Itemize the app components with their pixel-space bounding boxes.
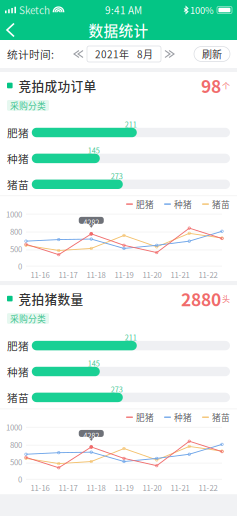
staticText: 145: [88, 358, 100, 369]
staticText: 500: [10, 456, 22, 467]
staticText: 11-17: [58, 269, 77, 280]
staticText: 数据统计: [88, 19, 148, 41]
staticText: 11-21: [170, 269, 189, 280]
staticText: 采购分类: [10, 99, 46, 112]
staticText: 0: [18, 474, 22, 485]
staticText: 肥猪: [136, 198, 154, 210]
staticText: 145: [88, 145, 100, 155]
staticText: 种猪: [174, 198, 192, 210]
staticText: 2880: [181, 286, 221, 311]
button[interactable]: 2021年: [87, 46, 161, 62]
staticText: 211: [125, 332, 137, 343]
staticText: 800: [10, 439, 22, 450]
staticText: 肥猪: [7, 338, 29, 353]
button[interactable]: Next month: [161, 46, 178, 61]
staticText: 2021年: [95, 47, 129, 61]
staticText: 0: [18, 260, 22, 272]
staticText: 1000: [6, 208, 22, 220]
staticText: 刷新: [202, 47, 222, 61]
staticText: 个: [222, 80, 230, 91]
staticText: 11-17: [58, 482, 77, 493]
staticText: 猪苗: [212, 411, 230, 423]
staticText: Sketch: [19, 3, 50, 17]
staticText: 1000: [6, 422, 22, 433]
staticText: 11-18: [86, 269, 105, 280]
staticText: 100%: [190, 3, 214, 17]
staticText: 273: [111, 171, 123, 181]
staticText: 98: [201, 73, 221, 98]
staticText: 种猪: [7, 151, 29, 166]
staticText: 竞拍猪数量: [19, 289, 84, 308]
staticText: 11-21: [170, 482, 189, 493]
staticText: 猪苗: [7, 177, 29, 192]
staticText: 4282: [83, 217, 99, 228]
button[interactable]: Previous month: [70, 46, 87, 61]
staticText: 11-16: [30, 482, 49, 493]
staticText: 11-19: [114, 269, 133, 280]
staticText: 800: [10, 226, 22, 237]
staticText: 500: [10, 243, 22, 254]
staticText: 11-22: [198, 269, 217, 280]
staticText: 竞拍成功订单: [19, 76, 97, 95]
button[interactable]: Back: [0, 20, 21, 40]
staticText: 11-18: [86, 482, 105, 493]
staticText: 采购分类: [10, 312, 46, 325]
staticText: 211: [125, 119, 137, 130]
staticText: 种猪: [174, 411, 192, 423]
staticText: 猪苗: [7, 390, 29, 405]
staticText: 273: [111, 384, 123, 394]
staticText: 4282: [83, 430, 99, 441]
staticText: 肥猪: [7, 125, 29, 140]
staticText: 11-20: [142, 482, 161, 493]
staticText: 9:41 AM: [105, 3, 142, 17]
staticText: 11-19: [114, 482, 133, 493]
staticText: 8月: [137, 47, 153, 61]
staticText: 种猪: [7, 364, 29, 379]
staticText: 11-20: [142, 269, 161, 280]
staticText: 11-22: [198, 482, 217, 493]
button[interactable]: 刷新: [194, 46, 230, 61]
staticText: 猪苗: [212, 198, 230, 210]
staticText: 11-16: [30, 269, 49, 280]
staticText: 肥猪: [136, 411, 154, 423]
staticText: 头: [222, 293, 230, 304]
staticText: 统计时间:: [7, 46, 54, 62]
